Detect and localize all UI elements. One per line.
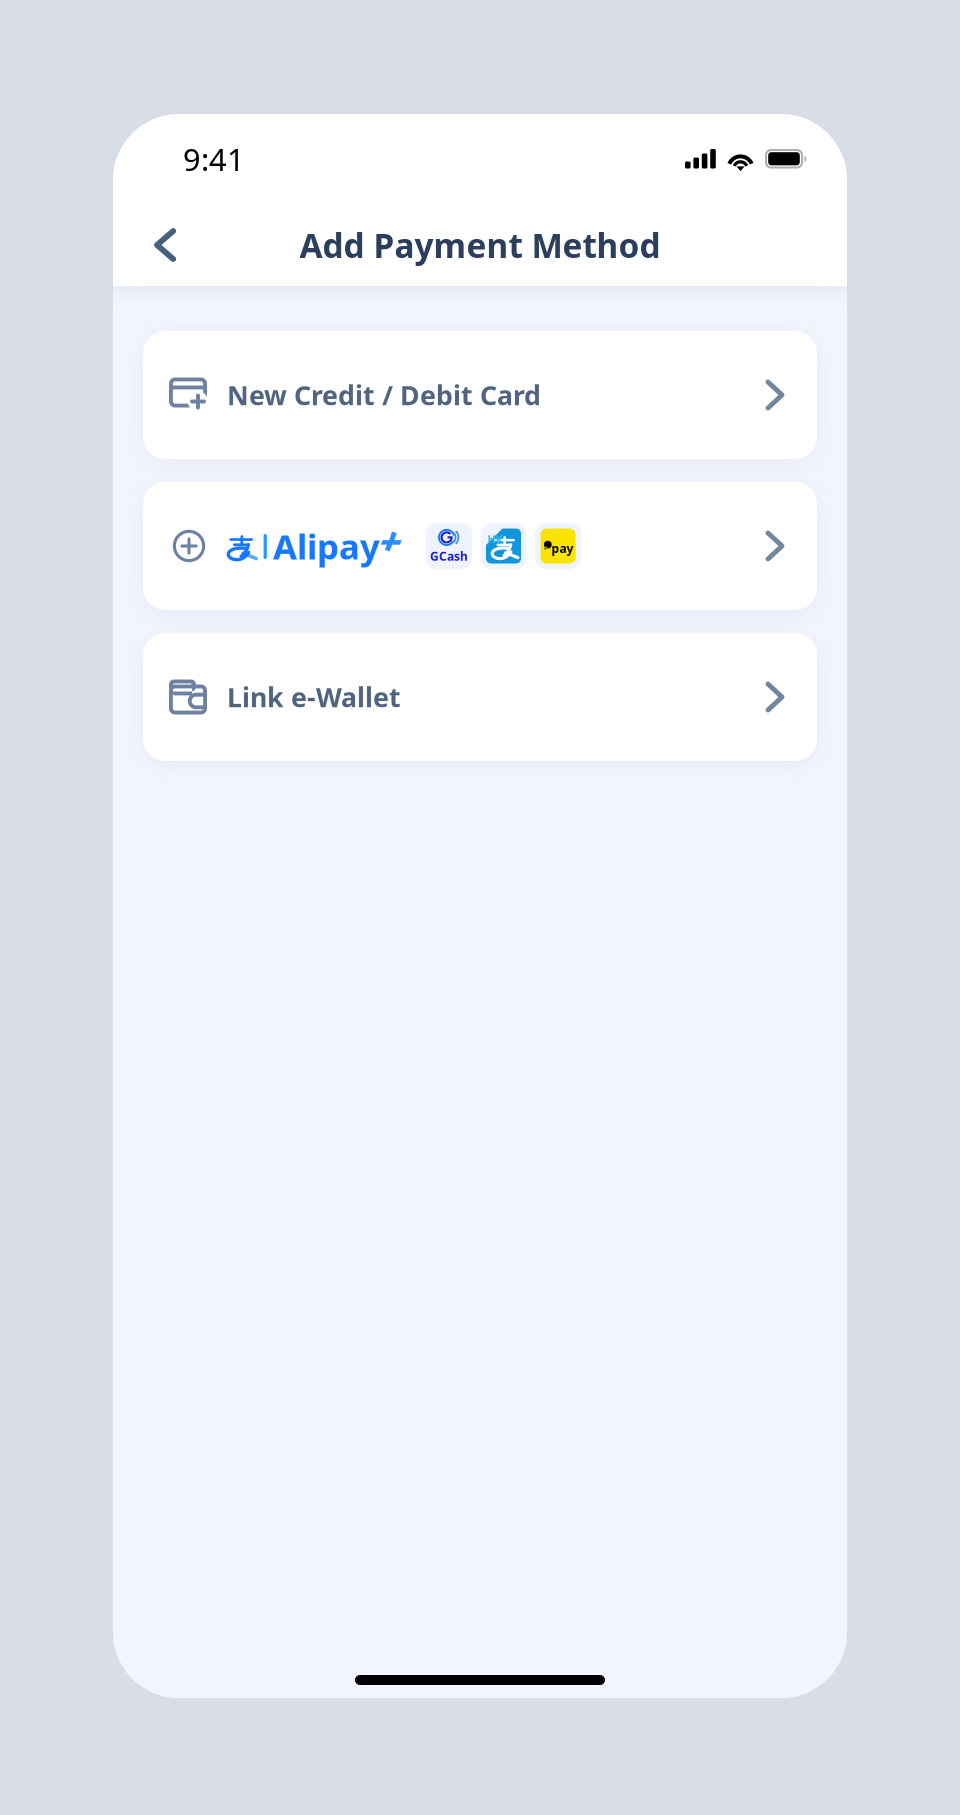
staticText: pay xyxy=(551,540,573,556)
staticText: Alipay xyxy=(273,523,380,569)
staticText: Link e-Wallet xyxy=(227,679,401,715)
staticText: HK xyxy=(487,532,502,546)
button[interactable]: Back xyxy=(136,216,194,274)
staticText: 9:41 xyxy=(183,139,245,179)
staticText: Add Payment Method xyxy=(299,223,660,267)
button[interactable]: Alipay+, GCash, AlipayHK, Kakao Pay xyxy=(143,482,817,610)
button[interactable]: New Credit / Debit Card xyxy=(143,331,817,459)
staticText: GCash xyxy=(430,548,468,564)
staticText: New Credit / Debit Card xyxy=(227,377,541,413)
button[interactable]: Link e-Wallet xyxy=(143,633,817,761)
